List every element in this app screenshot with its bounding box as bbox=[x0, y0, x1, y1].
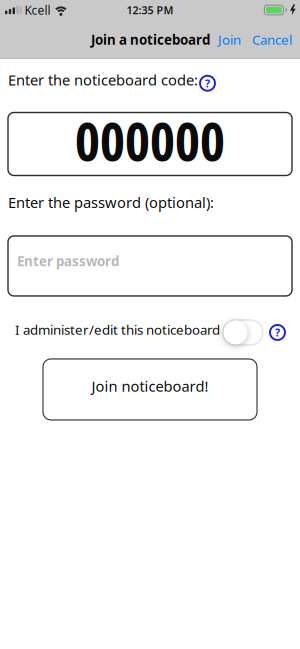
button[interactable]: Help bbox=[200, 72, 215, 87]
staticText: I administer/edit this noticeboard bbox=[15, 321, 220, 338]
staticText: 12:35 PM bbox=[126, 3, 173, 17]
staticText: Enter the password (optional): bbox=[8, 192, 214, 212]
staticText: ? bbox=[205, 76, 210, 90]
button[interactable]: Cancel bbox=[241, 31, 292, 48]
staticText: Cancel bbox=[252, 31, 292, 48]
button[interactable]: Help bbox=[263, 325, 285, 340]
button[interactable]: Join bbox=[210, 31, 241, 48]
button[interactable]: I administer/edit this noticeboard bbox=[220, 320, 263, 345]
staticText: ? bbox=[275, 325, 280, 340]
secureTextField[interactable]: Enter password bbox=[8, 236, 292, 296]
staticText: Join noticeboard! bbox=[91, 376, 208, 396]
textField[interactable]: 000000 bbox=[8, 112, 292, 175]
staticText: Join bbox=[218, 31, 241, 48]
button[interactable]: Join noticeboard! bbox=[43, 359, 257, 420]
staticText: Enter password bbox=[17, 252, 119, 270]
staticText: Kcell bbox=[24, 2, 50, 18]
staticText: Join a noticeboard bbox=[91, 31, 210, 48]
staticText: 000000 bbox=[75, 103, 225, 177]
staticText: Enter the noticeboard code: bbox=[8, 70, 198, 89]
